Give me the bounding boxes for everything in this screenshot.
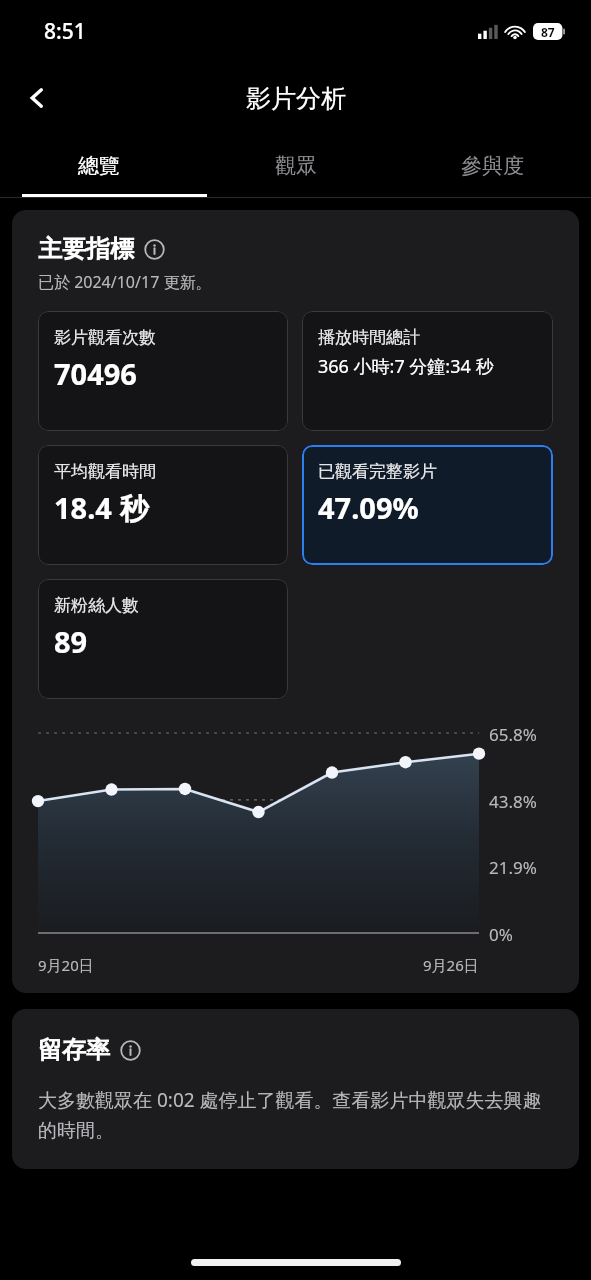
button[interactable]: 新粉絲人數 [38,579,288,699]
staticText: 65.8% [489,723,537,746]
button[interactable]: Back [10,71,64,125]
button[interactable]: 參與度 [394,134,591,198]
staticText: 影片觀看次數 [54,327,156,348]
staticText: 70496 [54,354,137,393]
staticText: 影片分析 [246,83,346,114]
staticText: 大多數觀眾在 0:02 處停止了觀看。查看影片中觀眾失去興趣的時間。 [38,1087,553,1143]
button[interactable]: 影片觀看次數 [38,311,288,431]
button[interactable]: 已觀看完整影片 [302,445,553,565]
button[interactable]: About retention [118,1038,142,1062]
staticText: 已觀看完整影片 [318,461,437,482]
staticText: 主要指標 [38,234,134,264]
staticText: 47.09% [318,488,419,527]
staticText: 9月20日 [38,955,94,975]
staticText: 播放時間總計 [318,327,420,348]
staticText: 觀眾 [275,153,317,179]
staticText: 43.8% [489,790,537,813]
staticText: 已於 2024/10/17 更新。 [38,271,212,293]
button[interactable]: 播放時間總計 [302,311,553,431]
staticText: 新粉絲人數 [54,595,139,616]
staticText: 21.9% [489,856,537,879]
staticText: 平均觀看時間 [54,461,156,482]
staticText: 留存率 [38,1035,110,1065]
staticText: 9月26日 [423,955,479,975]
staticText: 18.4 秒 [54,488,149,528]
button[interactable]: 總覽 [0,134,197,198]
staticText: 參與度 [461,153,524,179]
staticText: 87 [541,24,555,40]
button[interactable]: About key metrics [142,237,166,261]
button[interactable]: 平均觀看時間 [38,445,288,565]
staticText: 總覽 [78,153,120,179]
staticText: 89 [54,622,88,661]
staticText: 0% [489,923,513,946]
staticText: 8:51 [44,17,86,46]
button[interactable]: 觀眾 [197,134,394,198]
staticText: 366 小時:7 分鐘:34 秒 [318,354,494,379]
